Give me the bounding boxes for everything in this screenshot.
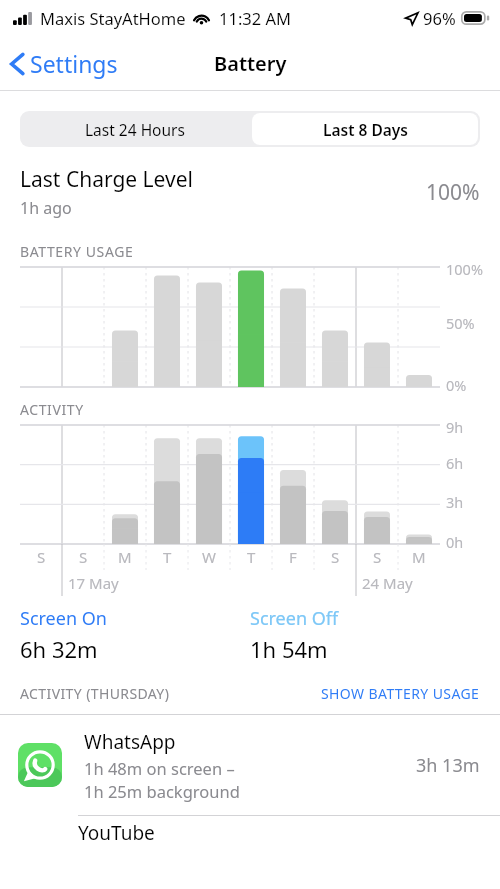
staticText: Last Charge Level	[20, 165, 193, 194]
button[interactable]: SHOW BATTERY USAGE	[321, 684, 480, 703]
staticText: M	[412, 547, 426, 567]
staticText: W	[202, 547, 216, 567]
staticText: Battery	[214, 50, 287, 77]
button[interactable]: Settings	[0, 44, 128, 83]
other: Location	[405, 12, 418, 25]
staticText: WhatsApp	[84, 729, 176, 755]
staticText: T	[163, 547, 172, 567]
staticText: 1h 48m on screen –	[84, 757, 235, 779]
staticText: 9h	[446, 417, 464, 437]
staticText: Last 8 Days	[323, 119, 408, 140]
staticText: ACTIVITY (THURSDAY)	[20, 684, 170, 703]
staticText: F	[289, 547, 297, 567]
staticText: 0h	[446, 532, 464, 552]
staticText: 11:32 AM	[219, 7, 291, 29]
staticText: S	[373, 547, 382, 567]
staticText: S	[37, 547, 46, 567]
staticText: 100%	[446, 259, 483, 279]
staticText: 1h ago	[20, 197, 72, 219]
staticText: 1h 25m background	[84, 780, 240, 802]
button[interactable]: Last 8 Days	[252, 113, 478, 145]
staticText: 96%	[423, 7, 456, 29]
staticText: ACTIVITY	[20, 400, 84, 419]
staticText: 100%	[426, 178, 480, 207]
staticText: 3h 13m	[416, 753, 480, 778]
staticText: T	[247, 547, 256, 567]
staticText: 24 May	[362, 573, 413, 593]
staticText: 0%	[446, 375, 467, 395]
staticText: 50%	[446, 313, 475, 333]
staticText: Last 24 Hours	[85, 119, 185, 140]
staticText: S	[79, 547, 88, 567]
staticText: 6h	[446, 453, 464, 473]
button[interactable]: Last 24 Hours	[20, 111, 250, 147]
staticText: Screen Off	[250, 606, 339, 631]
staticText: Maxis StayAtHome	[40, 7, 186, 29]
staticText: YouTube	[78, 820, 155, 846]
button[interactable]: WhatsApp	[0, 715, 500, 815]
staticText: Settings	[30, 48, 118, 79]
staticText: BATTERY USAGE	[20, 242, 134, 261]
staticText: SHOW BATTERY USAGE	[321, 684, 480, 703]
staticText: M	[118, 547, 132, 567]
staticText: Screen On	[20, 606, 107, 631]
staticText: 17 May	[68, 573, 119, 593]
staticText: S	[331, 547, 340, 567]
staticText: 3h	[446, 492, 464, 512]
staticText: 1h 54m	[250, 634, 328, 664]
staticText: 6h 32m	[20, 634, 98, 664]
